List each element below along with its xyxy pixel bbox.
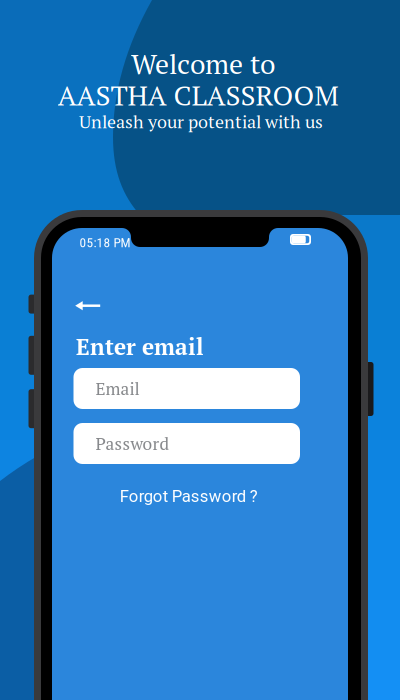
button[interactable]: Forgot Password ? xyxy=(114,480,264,512)
staticText: Forgot Password ? xyxy=(120,486,258,506)
staticText: 05:18 PM xyxy=(79,235,130,251)
staticText: Enter email xyxy=(76,331,204,361)
staticText: Unleash your potential with us xyxy=(79,109,323,133)
staticText: Password xyxy=(95,432,169,455)
staticText: Welcome to xyxy=(131,45,275,82)
button[interactable]: Password xyxy=(73,423,300,464)
button[interactable]: Email xyxy=(73,368,300,409)
staticText: AASTHA CLASSROOM xyxy=(57,76,338,114)
staticText: Email xyxy=(95,377,139,400)
button[interactable]: Back xyxy=(67,292,108,320)
